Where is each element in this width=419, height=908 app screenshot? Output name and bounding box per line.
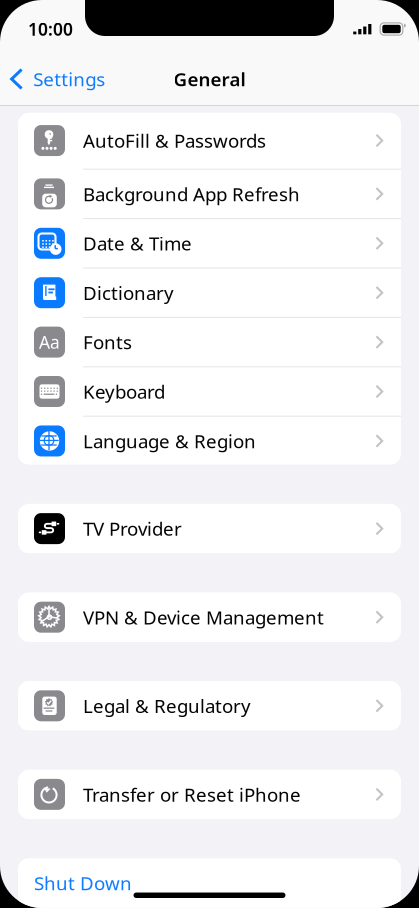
staticText: AutoFill & Passwords [83, 128, 266, 153]
staticText: Settings [33, 67, 105, 91]
button[interactable]: Legal & Regulatory [18, 681, 401, 731]
button[interactable]: Language & Region [18, 417, 401, 465]
staticText: Transfer or Reset iPhone [83, 782, 301, 807]
staticText: 10:00 [28, 17, 73, 40]
button[interactable]: TV Provider [18, 504, 401, 553]
button[interactable]: Background App Refresh [18, 170, 401, 219]
staticText: Background App Refresh [83, 181, 300, 206]
staticText: Dictionary [83, 280, 174, 305]
staticText: Shut Down [34, 871, 132, 895]
staticText: Date & Time [83, 231, 192, 256]
button[interactable]: VPN & Device Management [18, 592, 401, 642]
button[interactable]: Dictionary [18, 268, 401, 318]
button[interactable]: AutoFill & Passwords [18, 112, 401, 170]
button[interactable]: Aa [18, 318, 401, 367]
staticText: VPN & Device Management [83, 605, 324, 630]
button[interactable]: Keyboard [18, 367, 401, 417]
staticText: Legal & Regulatory [83, 693, 251, 718]
button[interactable]: Shut Down [18, 858, 401, 908]
button[interactable]: Transfer or Reset iPhone [18, 770, 401, 819]
staticText: Aa [39, 331, 60, 354]
staticText: Fonts [83, 330, 132, 354]
staticText: Language & Region [83, 429, 256, 453]
button[interactable]: Date & Time [18, 219, 401, 268]
button[interactable]: Settings [0, 56, 115, 102]
staticText: General [173, 67, 245, 91]
staticText: TV Provider [83, 516, 182, 541]
staticText: Keyboard [83, 379, 165, 404]
